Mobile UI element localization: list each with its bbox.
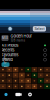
- button[interactable]: MIX: [0, 33, 50, 43]
- staticText: Golden Hour: [10, 34, 31, 38]
- button[interactable]: All Photos: [0, 43, 50, 48]
- staticText: MIX: [2, 36, 8, 40]
- button[interactable]: Shared: [0, 57, 50, 62]
- staticText: All Photos: [1, 43, 18, 48]
- staticText: Recents: [1, 48, 14, 52]
- button[interactable]: Profile: [8, 27, 12, 31]
- staticText: Shared: [1, 57, 12, 62]
- button[interactable]: Settings: [24, 89, 36, 100]
- staticText: Favourites: [1, 53, 18, 57]
- button[interactable]: Camera: [12, 89, 24, 100]
- button[interactable]: Share: [1, 62, 9, 67]
- staticText: Select: [34, 27, 44, 31]
- staticText: 128 items: [10, 38, 25, 42]
- button[interactable]: Recents: [0, 48, 50, 53]
- button[interactable]: Library: [0, 89, 12, 100]
- button[interactable]: Select: [33, 26, 46, 31]
- button[interactable]: Favourites: [0, 52, 50, 57]
- staticText: Share: [3, 56, 7, 73]
